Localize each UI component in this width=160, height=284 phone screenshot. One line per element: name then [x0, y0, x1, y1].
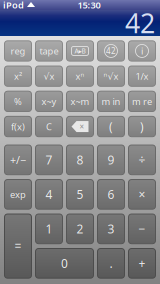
button[interactable]: 1 [35, 214, 62, 244]
button[interactable]: √x [35, 66, 62, 86]
staticText: ( [109, 119, 113, 134]
button[interactable]: ( [97, 116, 124, 137]
staticText: reg [10, 45, 25, 57]
button[interactable]: ÷ [128, 145, 155, 175]
staticText: 0 [61, 255, 68, 271]
staticText: 1 [45, 221, 52, 237]
staticText: xⁿ [75, 70, 84, 82]
button[interactable]: exp [4, 179, 31, 209]
staticText: 7 [45, 152, 52, 168]
staticText: 15:30 [77, 0, 100, 11]
staticText: 9 [107, 152, 114, 168]
button[interactable]: 4 [35, 179, 62, 209]
staticText: m re [132, 95, 152, 108]
button[interactable]: 42 [97, 41, 124, 61]
staticText: tape [39, 45, 58, 57]
staticText: x² [14, 70, 22, 82]
staticText: 1/x [135, 70, 148, 82]
button[interactable]: reg [4, 41, 31, 61]
button[interactable]: i [128, 41, 155, 61]
button[interactable]: − [128, 214, 155, 244]
button[interactable]: ) [128, 116, 155, 137]
button[interactable]: 1/x [128, 66, 155, 86]
button[interactable]: . [97, 248, 124, 278]
button[interactable]: m in [97, 91, 124, 111]
staticText: + [138, 255, 145, 271]
staticText: 42 [106, 46, 116, 56]
staticText: i [141, 45, 143, 57]
button[interactable]: x² [4, 66, 31, 86]
staticText: 3 [107, 221, 114, 237]
button[interactable]: + [128, 248, 155, 278]
staticText: 6 [107, 186, 114, 202]
staticText: +/− [10, 153, 26, 167]
button[interactable]: x~y [35, 91, 62, 111]
button[interactable]: 5 [66, 179, 93, 209]
button[interactable]: 0 [35, 248, 93, 278]
staticText: 8 [76, 152, 83, 168]
staticText: . [109, 255, 112, 271]
staticText: √x [43, 70, 54, 82]
button[interactable]: 6 [97, 179, 124, 209]
staticText: f(x) [11, 120, 25, 133]
staticText: x~y [41, 95, 56, 108]
button[interactable]: f(x) [4, 116, 31, 137]
staticText: × [79, 121, 84, 132]
button[interactable]: % [4, 91, 31, 111]
staticText: % [14, 95, 22, 108]
staticText: × [138, 186, 145, 202]
button[interactable]: 3 [97, 214, 124, 244]
button[interactable]: x~m [66, 91, 93, 111]
button[interactable]: × [66, 116, 93, 137]
button[interactable]: ⁿ√x [97, 66, 124, 86]
staticText: − [138, 221, 145, 237]
staticText: 42 [125, 5, 155, 41]
staticText: ) [140, 119, 144, 134]
staticText: x~m [70, 95, 89, 108]
staticText: 4 [45, 186, 52, 202]
button[interactable]: C [35, 116, 62, 137]
staticText: iPod [3, 0, 24, 11]
button[interactable]: 7 [35, 145, 62, 175]
staticText: ⁿ√x [103, 70, 118, 82]
staticText: 2 [76, 221, 83, 237]
staticText: exp [10, 188, 26, 201]
button[interactable]: 8 [66, 145, 93, 175]
button[interactable]: A▸B [66, 41, 93, 61]
button[interactable]: 9 [97, 145, 124, 175]
button[interactable]: m re [128, 91, 155, 111]
staticText: C [46, 120, 52, 133]
button[interactable]: = [4, 214, 31, 278]
button[interactable]: +/− [4, 145, 31, 175]
button[interactable]: × [128, 179, 155, 209]
staticText: A▸B [74, 46, 85, 55]
button[interactable]: tape [35, 41, 62, 61]
staticText: m in [101, 95, 120, 108]
staticText: ÷ [138, 152, 145, 168]
staticText: = [14, 238, 21, 254]
button[interactable]: xⁿ [66, 66, 93, 86]
staticText: 5 [76, 186, 83, 202]
button[interactable]: 2 [66, 214, 93, 244]
